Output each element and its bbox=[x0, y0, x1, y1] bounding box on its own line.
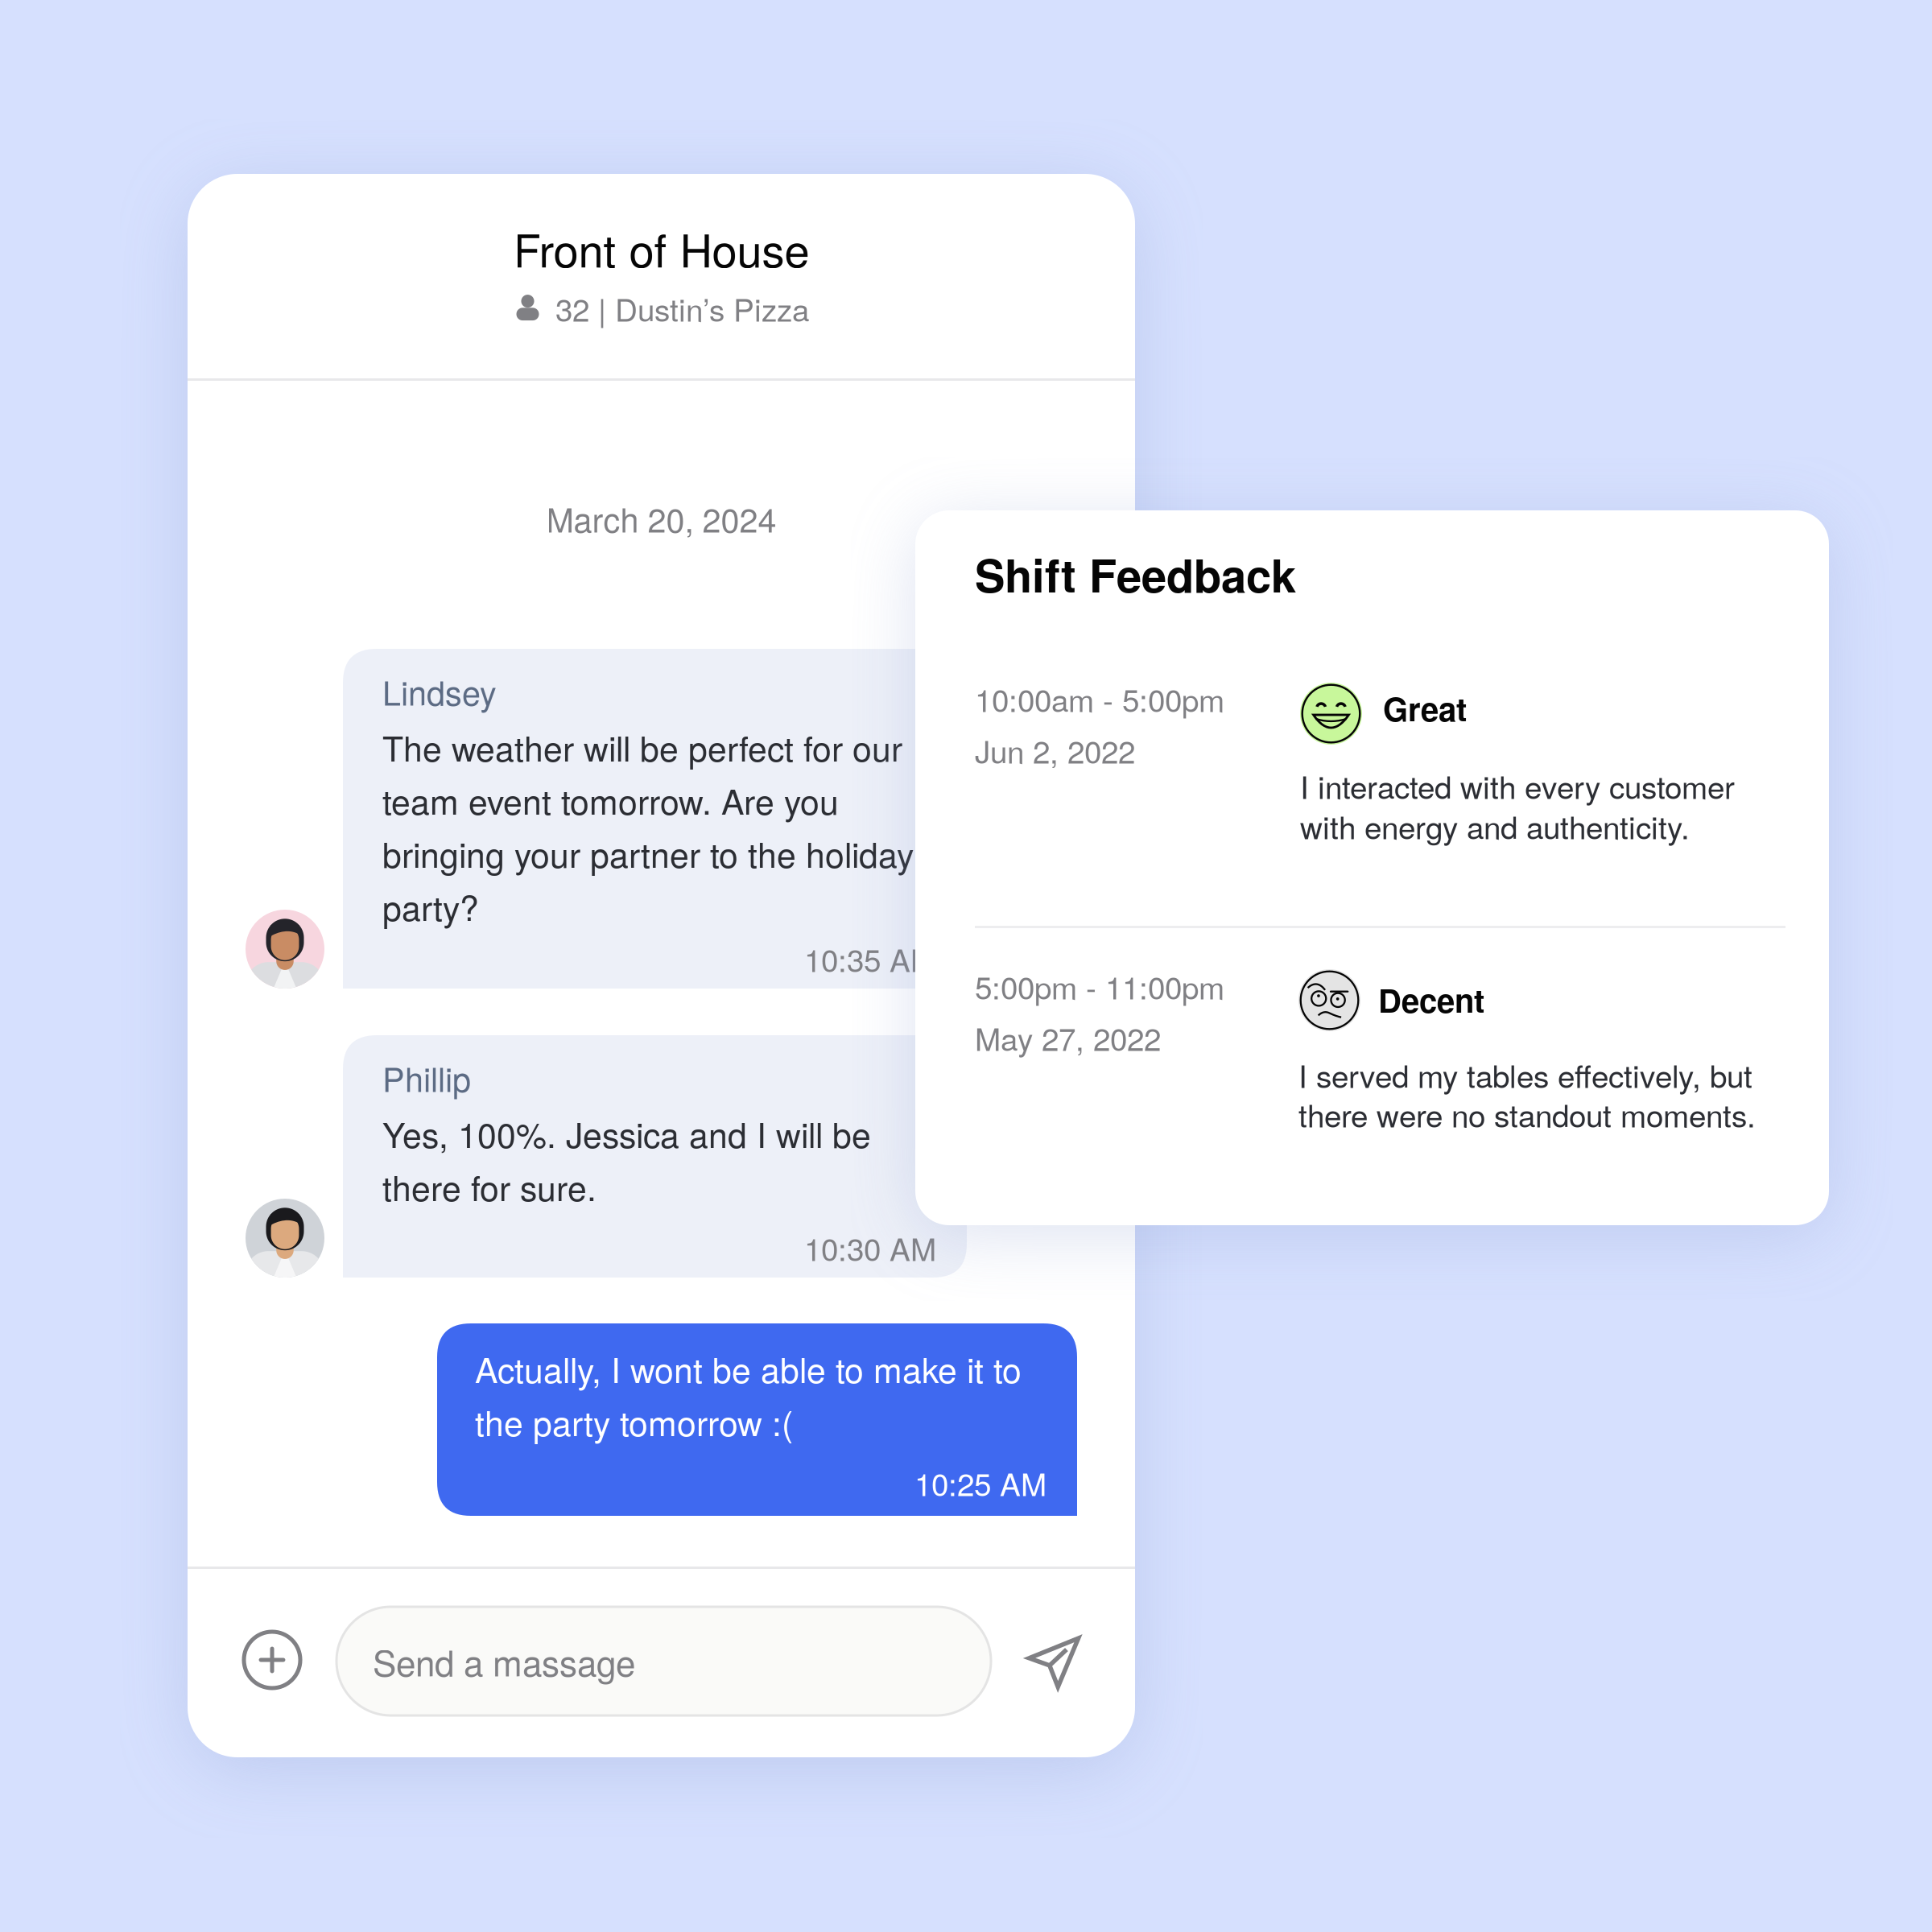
staticText: party? bbox=[382, 881, 479, 931]
button[interactable]: Add attachment bbox=[230, 1613, 314, 1707]
staticText: 32 | Dustin’s Pizza bbox=[555, 286, 809, 330]
staticText: Great bbox=[1383, 685, 1467, 731]
staticText: I served my tables effectively, but bbox=[1298, 1052, 1752, 1097]
staticText: The weather will be perfect for our bbox=[382, 722, 902, 771]
staticText: Jun 2, 2022 bbox=[975, 728, 1135, 772]
staticText: 5:00pm - 11:00pm bbox=[975, 964, 1224, 1008]
staticText: Front of House bbox=[513, 216, 809, 280]
staticText: with energy and authenticity. bbox=[1300, 803, 1690, 848]
staticText: Yes, 100%. Jessica and I will be bbox=[382, 1108, 871, 1158]
staticText: March 20, 2024 bbox=[546, 494, 776, 542]
staticText: there for sure. bbox=[382, 1162, 597, 1211]
button[interactable]: Send bbox=[1013, 1616, 1094, 1709]
staticText: 10:25 AM bbox=[914, 1460, 1046, 1505]
staticText: Phillip bbox=[382, 1054, 471, 1101]
staticText: 10:35 AM bbox=[804, 936, 936, 981]
staticText: there were no standout moments. bbox=[1298, 1092, 1756, 1136]
staticText: bringing your partner to the holiday bbox=[382, 828, 914, 878]
staticText: Shift Feedback bbox=[975, 542, 1296, 606]
staticText: Send a massage bbox=[373, 1636, 635, 1686]
staticText: May 27, 2022 bbox=[975, 1015, 1161, 1060]
button[interactable]: Send a massage bbox=[336, 1607, 991, 1715]
staticText: Actually, I wont be able to make it to bbox=[475, 1344, 1022, 1393]
staticText: team event tomorrow. Are you bbox=[382, 775, 839, 824]
staticText: 10:30 AM bbox=[804, 1225, 936, 1270]
staticText: 10:00am - 5:00pm bbox=[975, 676, 1224, 721]
staticText: the party tomorrow :( bbox=[475, 1397, 793, 1446]
staticText: Decent bbox=[1378, 976, 1484, 1023]
staticText: Lindsey bbox=[382, 667, 497, 715]
staticText: I interacted with every customer bbox=[1300, 763, 1735, 808]
